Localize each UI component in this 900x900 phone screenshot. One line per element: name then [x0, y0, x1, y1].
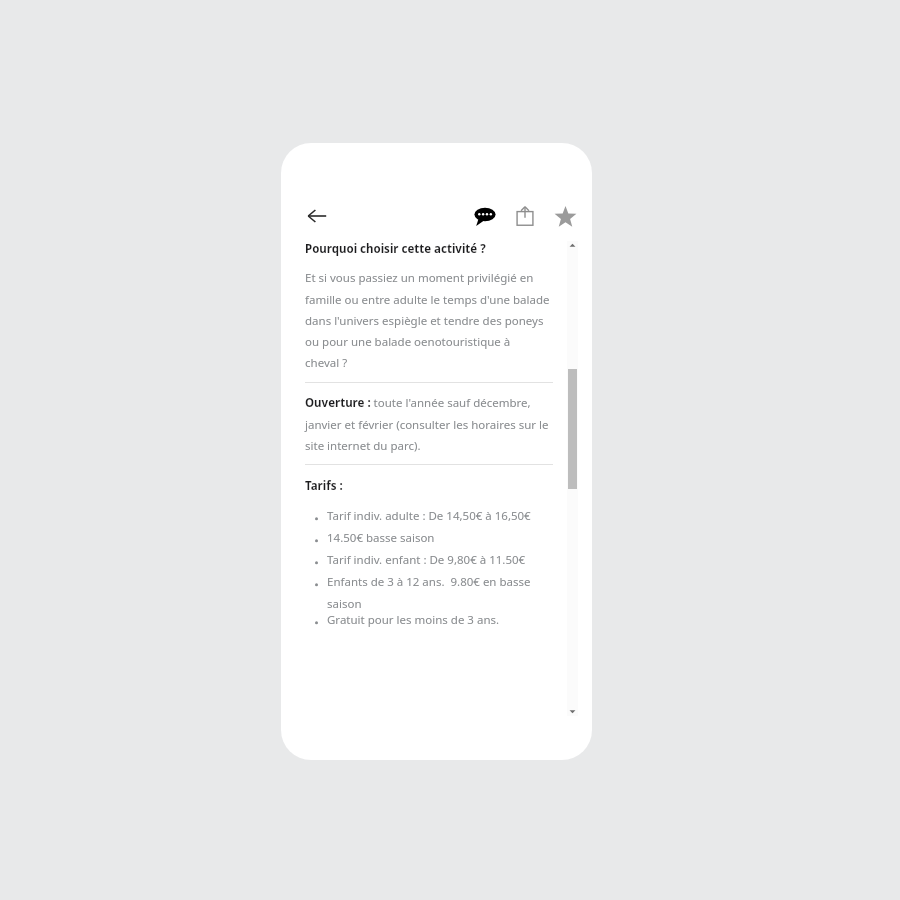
staticText: Pourquoi choisir cette activité ?	[305, 241, 486, 257]
staticText: Tarif indiv. enfant : De 9,80€ à 11.50€	[327, 552, 526, 568]
staticText: Et si vous passiez un moment privilégié …	[305, 270, 555, 370]
staticText: Gratuit pour les moins de 3 ans.	[327, 612, 500, 628]
staticText: Ouverture : toute l'année sauf décembre,…	[305, 395, 555, 453]
staticText: Enfants de 3 à 12 ans. 9.80€ en basse sa…	[327, 574, 555, 611]
staticText: Tarifs :	[305, 478, 343, 494]
button[interactable]: Back	[295, 194, 339, 238]
staticText: 14.50€ basse saison	[327, 530, 435, 546]
staticText: Tarif indiv. adulte : De 14,50€ à 16,50€	[327, 508, 531, 524]
button[interactable]: Favorite	[543, 194, 587, 238]
button[interactable]: Comments	[463, 194, 507, 238]
button[interactable]: Share	[503, 194, 547, 238]
